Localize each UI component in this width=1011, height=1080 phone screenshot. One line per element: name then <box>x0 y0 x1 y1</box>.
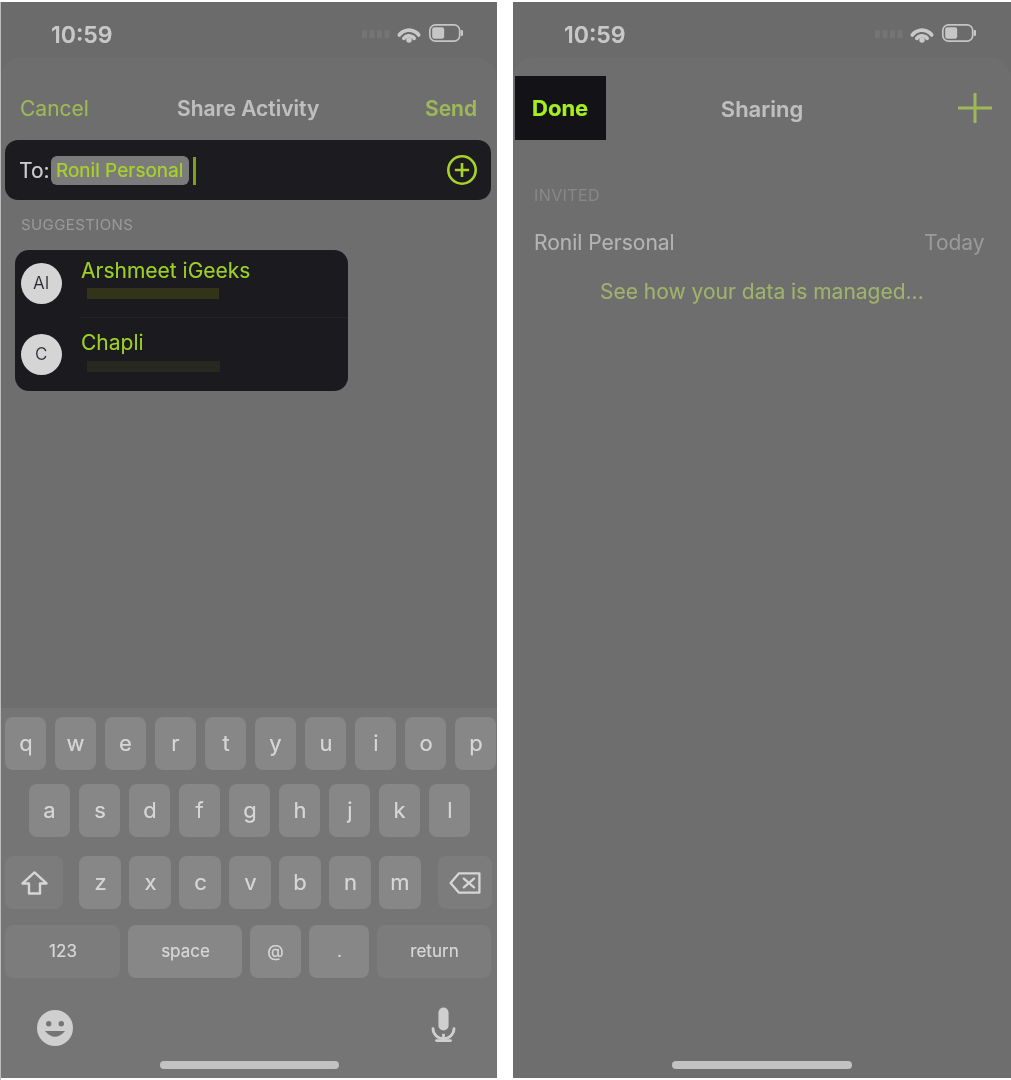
staticText: 10:59 <box>564 21 626 49</box>
button[interactable]: 123 <box>5 925 120 978</box>
staticText: k <box>393 797 406 824</box>
button[interactable]: m <box>379 856 421 909</box>
button[interactable]: To: <box>5 140 491 200</box>
button[interactable]: space <box>128 925 242 978</box>
staticText: r <box>171 730 180 757</box>
staticText: See how your data is managed... <box>600 279 924 304</box>
staticText: 10:59 <box>51 21 113 49</box>
button[interactable]: Dictation <box>426 1005 461 1045</box>
button[interactable]: s <box>79 784 120 837</box>
button[interactable]: n <box>329 856 371 909</box>
staticText: t <box>222 730 230 757</box>
staticText: Arshmeet iGeeks <box>81 258 251 283</box>
button[interactable]: Emoji keyboard <box>37 1010 73 1046</box>
staticText: h <box>293 797 307 824</box>
staticText: C <box>35 344 48 365</box>
staticText: Sharing <box>513 96 1011 123</box>
staticText: x <box>144 869 157 896</box>
button[interactable]: g <box>229 784 270 837</box>
staticText: . <box>337 941 342 962</box>
button[interactable]: Add contact <box>447 155 477 185</box>
button[interactable]: a <box>29 784 70 837</box>
button[interactable]: . <box>309 925 369 978</box>
button[interactable]: z <box>79 856 121 909</box>
staticText: b <box>293 869 307 896</box>
button[interactable]: h <box>279 784 320 837</box>
staticText: return <box>410 941 459 962</box>
staticText: v <box>244 869 257 896</box>
staticText: Ronil Personal <box>56 159 184 182</box>
button[interactable]: Cancel <box>12 87 97 130</box>
button[interactable]: @ <box>250 925 301 978</box>
button[interactable]: Add person <box>957 90 993 126</box>
staticText: o <box>419 730 433 757</box>
staticText: n <box>344 869 357 896</box>
staticText: Today <box>924 230 985 255</box>
staticText: INVITED <box>534 185 600 204</box>
button[interactable]: Shift <box>5 856 63 909</box>
button[interactable]: q <box>5 717 46 770</box>
staticText: 123 <box>49 941 77 962</box>
staticText: i <box>373 730 379 757</box>
button[interactable]: o <box>405 717 446 770</box>
staticText: p <box>469 730 483 757</box>
staticText: m <box>390 869 410 896</box>
button[interactable]: x <box>129 856 171 909</box>
staticText: Send <box>425 96 478 121</box>
staticText: Cancel <box>20 96 89 121</box>
staticText: Share Activity <box>177 96 320 121</box>
staticText: q <box>19 730 33 757</box>
button[interactable]: e <box>105 717 146 770</box>
button[interactable]: r <box>155 717 196 770</box>
button[interactable]: d <box>129 784 170 837</box>
button[interactable]: w <box>55 717 96 770</box>
staticText: l <box>447 797 453 824</box>
button[interactable]: c <box>179 856 221 909</box>
staticText: space <box>161 941 210 962</box>
staticText: c <box>194 869 207 896</box>
button[interactable]: return <box>377 925 491 978</box>
staticText: Chapli <box>81 330 144 355</box>
button[interactable]: p <box>455 717 496 770</box>
staticText: s <box>94 797 106 824</box>
button[interactable]: Ronil Personal <box>513 226 1011 258</box>
staticText: f <box>195 797 204 824</box>
button[interactable]: Backspace <box>438 856 492 909</box>
staticText: Done <box>532 95 589 122</box>
button[interactable]: u <box>305 717 346 770</box>
staticText: g <box>243 797 257 824</box>
button[interactable]: Send <box>417 87 486 130</box>
button[interactable]: l <box>429 784 470 837</box>
button[interactable]: t <box>205 717 246 770</box>
staticText: y <box>269 730 282 757</box>
staticText: e <box>119 730 132 757</box>
staticText: d <box>143 797 157 824</box>
staticText: j <box>347 797 353 824</box>
staticText: SUGGESTIONS <box>21 215 134 233</box>
staticText: AI <box>33 273 50 294</box>
staticText: z <box>94 869 107 896</box>
button[interactable]: Done <box>515 76 606 140</box>
button[interactable]: b <box>279 856 321 909</box>
staticText: u <box>319 730 333 757</box>
staticText: To: <box>19 158 50 183</box>
button[interactable]: y <box>255 717 296 770</box>
staticText: w <box>66 730 85 757</box>
button[interactable]: v <box>229 856 271 909</box>
staticText: @ <box>267 941 284 962</box>
button[interactable]: j <box>329 784 370 837</box>
button[interactable]: f <box>179 784 220 837</box>
button[interactable]: AI <box>15 250 348 317</box>
button[interactable]: k <box>379 784 420 837</box>
staticText: Ronil Personal <box>534 230 675 255</box>
button[interactable]: See how your data is managed... <box>596 276 928 307</box>
button[interactable]: i <box>355 717 396 770</box>
staticText: a <box>43 797 56 824</box>
button[interactable]: C <box>15 318 348 391</box>
